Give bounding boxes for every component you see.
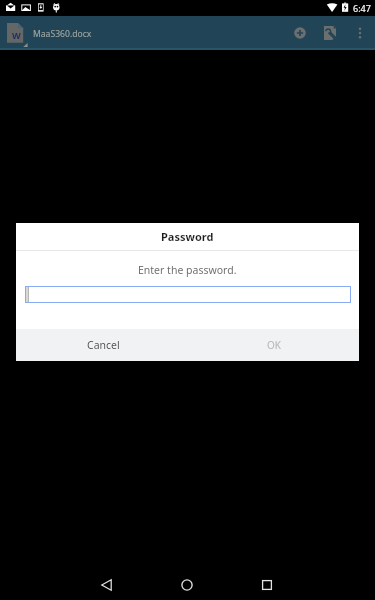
button[interactable]: Add: [286, 19, 314, 47]
button[interactable]: Home: [165, 563, 209, 600]
staticText: OK: [267, 338, 281, 352]
button[interactable]: More options: [347, 20, 373, 46]
staticText: Password: [161, 229, 214, 244]
staticText: Cancel: [87, 338, 120, 352]
button[interactable]: Recent apps: [245, 563, 289, 600]
button[interactable]: [25, 286, 351, 303]
button[interactable]: Back: [85, 563, 129, 600]
button[interactable]: Document tools: [316, 19, 344, 47]
button[interactable]: OK: [187, 329, 359, 361]
staticText: Enter the password.: [138, 263, 237, 277]
button[interactable]: Cancel: [16, 329, 187, 361]
staticText: W: [12, 29, 21, 41]
staticText: 6:47: [353, 2, 371, 14]
staticText: MaaS360.docx: [33, 28, 92, 40]
